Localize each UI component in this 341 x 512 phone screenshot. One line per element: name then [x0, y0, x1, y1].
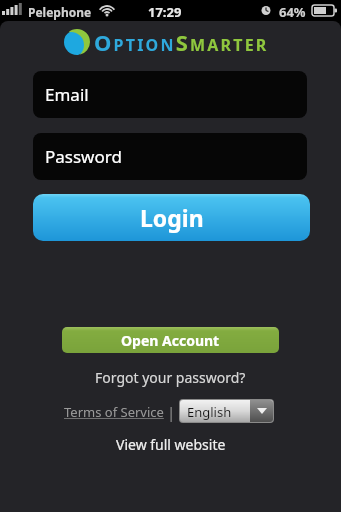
- staticText: Open Account: [121, 331, 220, 350]
- button[interactable]: View full website: [116, 435, 226, 454]
- button[interactable]: Open Account: [62, 327, 279, 353]
- staticText: |: [167, 402, 176, 422]
- staticText: Email: [45, 83, 89, 106]
- staticText: English: [187, 403, 232, 421]
- button[interactable]: Forgot your password?: [95, 368, 246, 387]
- button[interactable]: English: [179, 399, 274, 423]
- button[interactable]: Login: [33, 194, 310, 241]
- staticText: Password: [45, 145, 122, 168]
- staticText: Pelephone: [28, 4, 92, 20]
- staticText: 64%: [279, 3, 306, 21]
- button[interactable]: Email: [33, 71, 307, 118]
- staticText: Login: [140, 202, 204, 233]
- staticText: OPTIONSMARTER: [94, 27, 269, 57]
- staticText: 17:29: [148, 3, 182, 21]
- button[interactable]: Password: [33, 133, 307, 180]
- button[interactable]: Terms of Service: [64, 403, 164, 421]
